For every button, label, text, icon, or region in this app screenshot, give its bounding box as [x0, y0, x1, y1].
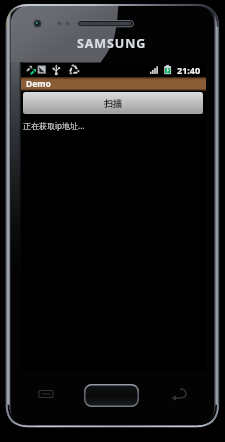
button[interactable]: Demo [21, 77, 206, 91]
button[interactable]: Menu [33, 384, 59, 404]
button[interactable]: 扫描 [23, 92, 203, 114]
button[interactable]: Home [84, 384, 139, 407]
staticText: 扫描 [104, 98, 122, 109]
staticText: SAMSUNG [77, 35, 147, 52]
staticText: 正在获取ip地址... [23, 120, 85, 131]
button[interactable]: Back [166, 384, 192, 404]
staticText: Demo [26, 78, 51, 90]
staticText: 21:40 [177, 64, 201, 76]
